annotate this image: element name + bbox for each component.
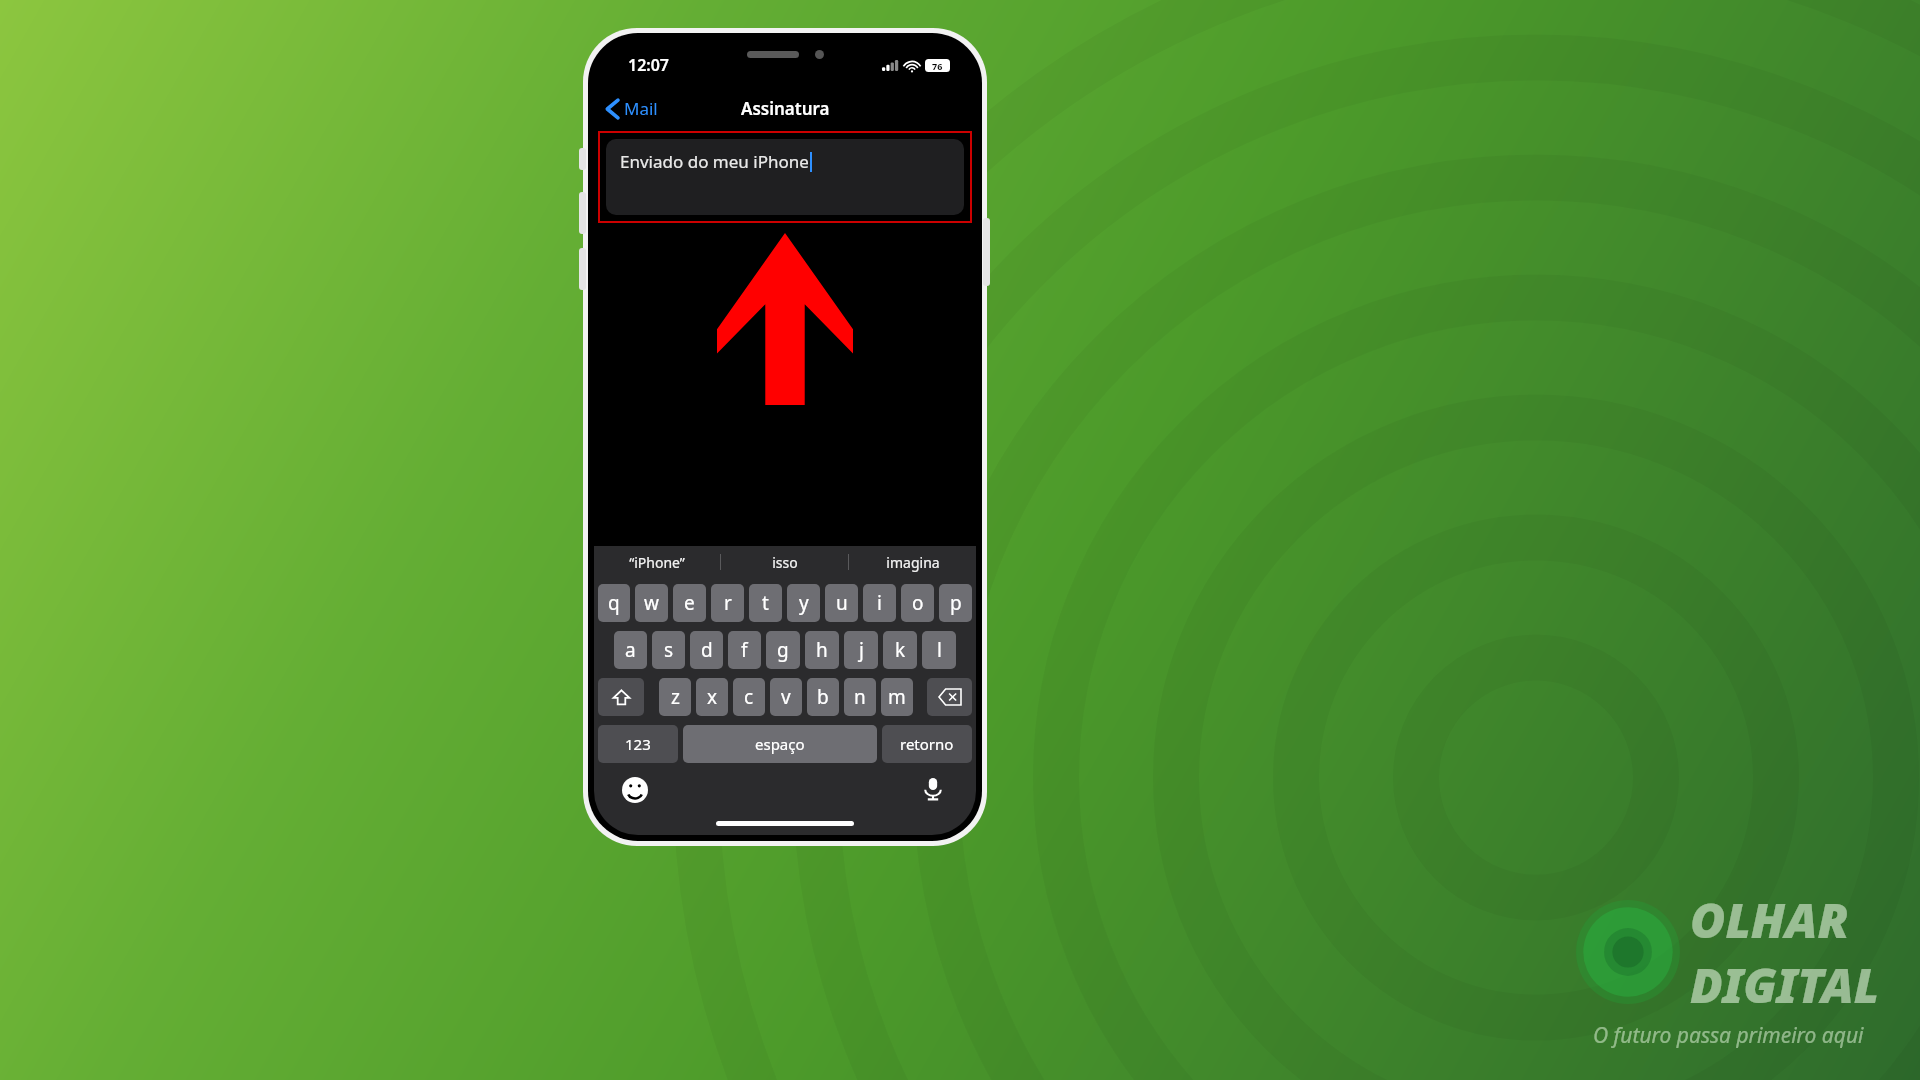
button[interactable]: x <box>696 678 728 716</box>
staticText: u <box>836 590 848 616</box>
staticText: 123 <box>625 734 651 754</box>
staticText: o <box>912 590 924 616</box>
button[interactable]: e <box>673 584 706 622</box>
button[interactable]: g <box>766 631 800 669</box>
button[interactable]: q <box>598 584 630 622</box>
staticText: Mail <box>624 97 658 120</box>
staticText: espaço <box>755 734 805 754</box>
button[interactable]: d <box>690 631 723 669</box>
staticText: x <box>707 684 718 710</box>
staticText: e <box>684 590 695 616</box>
staticText: DIGITAL <box>1690 952 1880 1017</box>
button[interactable]: Enviado do meu iPhone <box>606 139 964 215</box>
staticText: OLHAR <box>1690 887 1849 952</box>
button[interactable]: h <box>805 631 839 669</box>
staticText: isso <box>772 553 798 572</box>
button[interactable]: isso <box>721 546 848 578</box>
staticText: g <box>777 637 789 663</box>
button[interactable]: n <box>844 678 876 716</box>
staticText: n <box>854 684 866 710</box>
staticText: f <box>741 637 748 663</box>
staticText: retorno <box>900 734 954 754</box>
button[interactable]: j <box>844 631 878 669</box>
button[interactable]: m <box>881 678 913 716</box>
staticText: Assinatura <box>741 97 830 120</box>
staticText: p <box>950 590 962 616</box>
button[interactable]: Apagar <box>927 678 972 716</box>
staticText: 76 <box>932 60 943 72</box>
staticText: imagina <box>886 553 940 572</box>
button[interactable]: Shift <box>598 678 644 716</box>
staticText: s <box>664 637 674 663</box>
button[interactable]: v <box>770 678 802 716</box>
staticText: 12:07 <box>628 54 670 76</box>
button[interactable]: y <box>787 584 820 622</box>
staticText: h <box>816 637 828 663</box>
staticText: t <box>762 590 769 616</box>
staticText: w <box>644 590 659 616</box>
button[interactable]: imagina <box>849 546 976 578</box>
button[interactable]: b <box>807 678 839 716</box>
staticText: q <box>608 590 620 616</box>
button[interactable]: s <box>652 631 685 669</box>
button[interactable]: l <box>922 631 956 669</box>
staticText: d <box>701 637 713 663</box>
staticText: z <box>671 684 680 710</box>
button[interactable]: “iPhone” <box>594 546 720 578</box>
staticText: b <box>817 684 829 710</box>
button[interactable]: 123 <box>598 725 678 763</box>
staticText: “iPhone” <box>629 553 685 572</box>
staticText: c <box>744 684 754 710</box>
staticText: l <box>937 637 942 663</box>
button[interactable]: u <box>825 584 858 622</box>
staticText: k <box>895 637 906 663</box>
staticText: m <box>888 684 906 710</box>
button[interactable]: Mail <box>594 93 668 124</box>
button[interactable]: t <box>749 584 782 622</box>
staticText: r <box>724 590 732 616</box>
button[interactable]: retorno <box>882 725 972 763</box>
button[interactable]: espaço <box>683 725 877 763</box>
button[interactable]: c <box>733 678 765 716</box>
button[interactable]: i <box>863 584 896 622</box>
button[interactable]: r <box>711 584 744 622</box>
staticText: j <box>859 637 864 663</box>
staticText: i <box>877 590 882 616</box>
button[interactable]: Ditado <box>920 776 946 802</box>
button[interactable]: k <box>883 631 917 669</box>
button[interactable]: f <box>728 631 761 669</box>
button[interactable]: z <box>659 678 691 716</box>
button[interactable]: p <box>939 584 972 622</box>
button[interactable]: w <box>635 584 668 622</box>
staticText: y <box>799 590 809 616</box>
staticText: O futuro passa primeiro aqui <box>1593 1021 1864 1050</box>
button[interactable]: o <box>901 584 934 622</box>
staticText: Enviado do meu iPhone <box>620 150 809 173</box>
staticText: v <box>781 684 791 710</box>
button[interactable]: a <box>614 631 647 669</box>
other: Seta apontando para o campo de assinatur… <box>717 233 853 405</box>
button[interactable]: Emoji <box>622 777 648 803</box>
staticText: a <box>625 637 636 663</box>
